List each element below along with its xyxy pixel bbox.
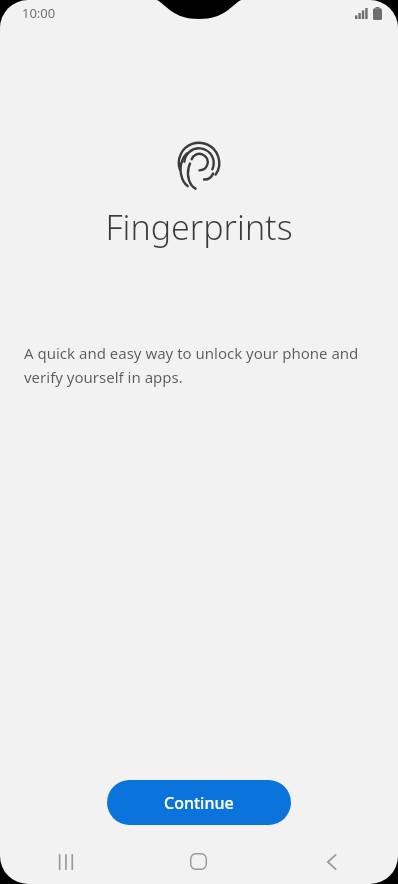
button[interactable]: Back: [265, 839, 398, 884]
staticText: 10:00: [22, 4, 56, 22]
staticText: A quick and easy way to unlock your phon…: [24, 343, 376, 387]
button[interactable]: Continue: [107, 780, 291, 825]
button[interactable]: Recent apps: [0, 839, 132, 884]
staticText: Fingerprints: [105, 204, 293, 250]
staticText: Continue: [164, 792, 234, 814]
button[interactable]: Home: [132, 839, 265, 884]
